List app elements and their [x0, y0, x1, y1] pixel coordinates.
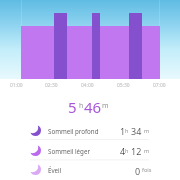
button[interactable]: Éveil [0, 160, 180, 179]
staticText: 12 [131, 145, 142, 157]
staticText: h [79, 101, 84, 111]
staticText: 34 [131, 125, 142, 137]
staticText: 5 [68, 97, 77, 117]
staticText: 05:30 [117, 82, 130, 89]
staticText: 07:00 [153, 82, 166, 89]
staticText: 1 [120, 125, 126, 137]
other: Sommeil profond [30, 125, 41, 136]
other: Sommeil léger [30, 145, 41, 156]
staticText: 4 [120, 145, 126, 157]
staticText: h [125, 147, 129, 155]
staticText: Éveil [48, 166, 62, 174]
other: Éveil [30, 164, 41, 175]
staticText: h [125, 127, 129, 135]
staticText: 02:30 [45, 82, 58, 89]
staticText: 01:00 [10, 82, 23, 89]
staticText: m [144, 147, 150, 155]
staticText: Sommeil profond [48, 127, 99, 135]
staticText: 46 [84, 97, 102, 117]
staticText: fois [142, 166, 152, 174]
staticText: 04:00 [81, 82, 94, 89]
staticText: m [102, 101, 109, 111]
staticText: Sommeil léger [48, 147, 90, 155]
button[interactable]: Sommeil léger [0, 141, 180, 160]
staticText: 0 [135, 165, 141, 177]
button[interactable]: Sommeil profond [0, 121, 180, 140]
staticText: m [144, 127, 150, 135]
